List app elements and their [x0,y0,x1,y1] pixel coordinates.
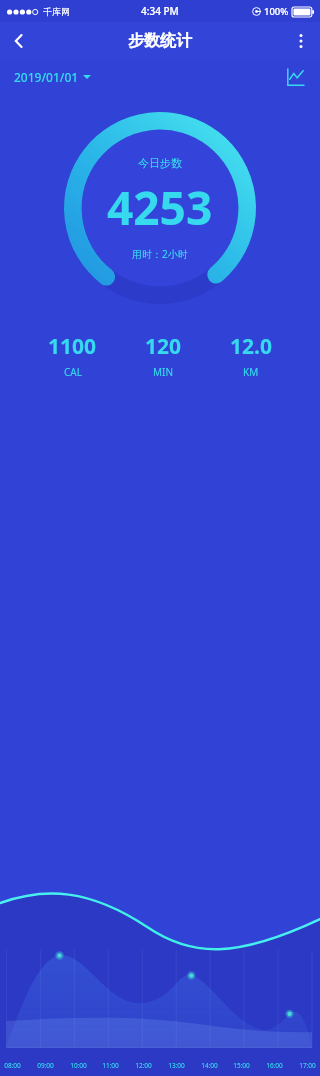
staticText: 17:00 [299,1061,316,1070]
button[interactable]: Back [0,22,38,60]
staticText: MIN [153,365,174,379]
staticText: 2019/01/01 [14,69,79,85]
staticText: 120 [145,332,182,361]
staticText: 15:00 [233,1061,250,1070]
button[interactable]: Chart view [280,62,310,92]
staticText: KM [243,365,259,379]
button[interactable]: 120 [135,330,192,381]
staticText: 今日步数 [138,156,182,170]
staticText: 12:00 [135,1061,152,1070]
staticText: 100% [264,5,289,18]
staticText: 4253 [107,176,213,239]
button[interactable]: 12.0 [220,330,282,381]
staticText: 1100 [48,332,97,361]
staticText: 08:00 [4,1061,21,1070]
staticText: 千库网 [43,6,70,17]
staticText: 用时：2小时 [132,247,188,261]
staticText: 16:00 [266,1061,283,1070]
staticText: 步数统计 [128,31,192,51]
staticText: 14:00 [201,1061,218,1070]
staticText: 10:00 [70,1061,87,1070]
staticText: 11:00 [102,1061,119,1070]
staticText: 4:34 PM [141,4,179,18]
staticText: 12.0 [230,332,272,361]
button[interactable]: 2019/01/01 [12,65,93,89]
button[interactable]: 1100 [38,330,107,381]
staticText: 13:00 [168,1061,185,1070]
staticText: CAL [64,365,82,379]
button[interactable]: More options [282,22,320,60]
staticText: 09:00 [37,1061,54,1070]
